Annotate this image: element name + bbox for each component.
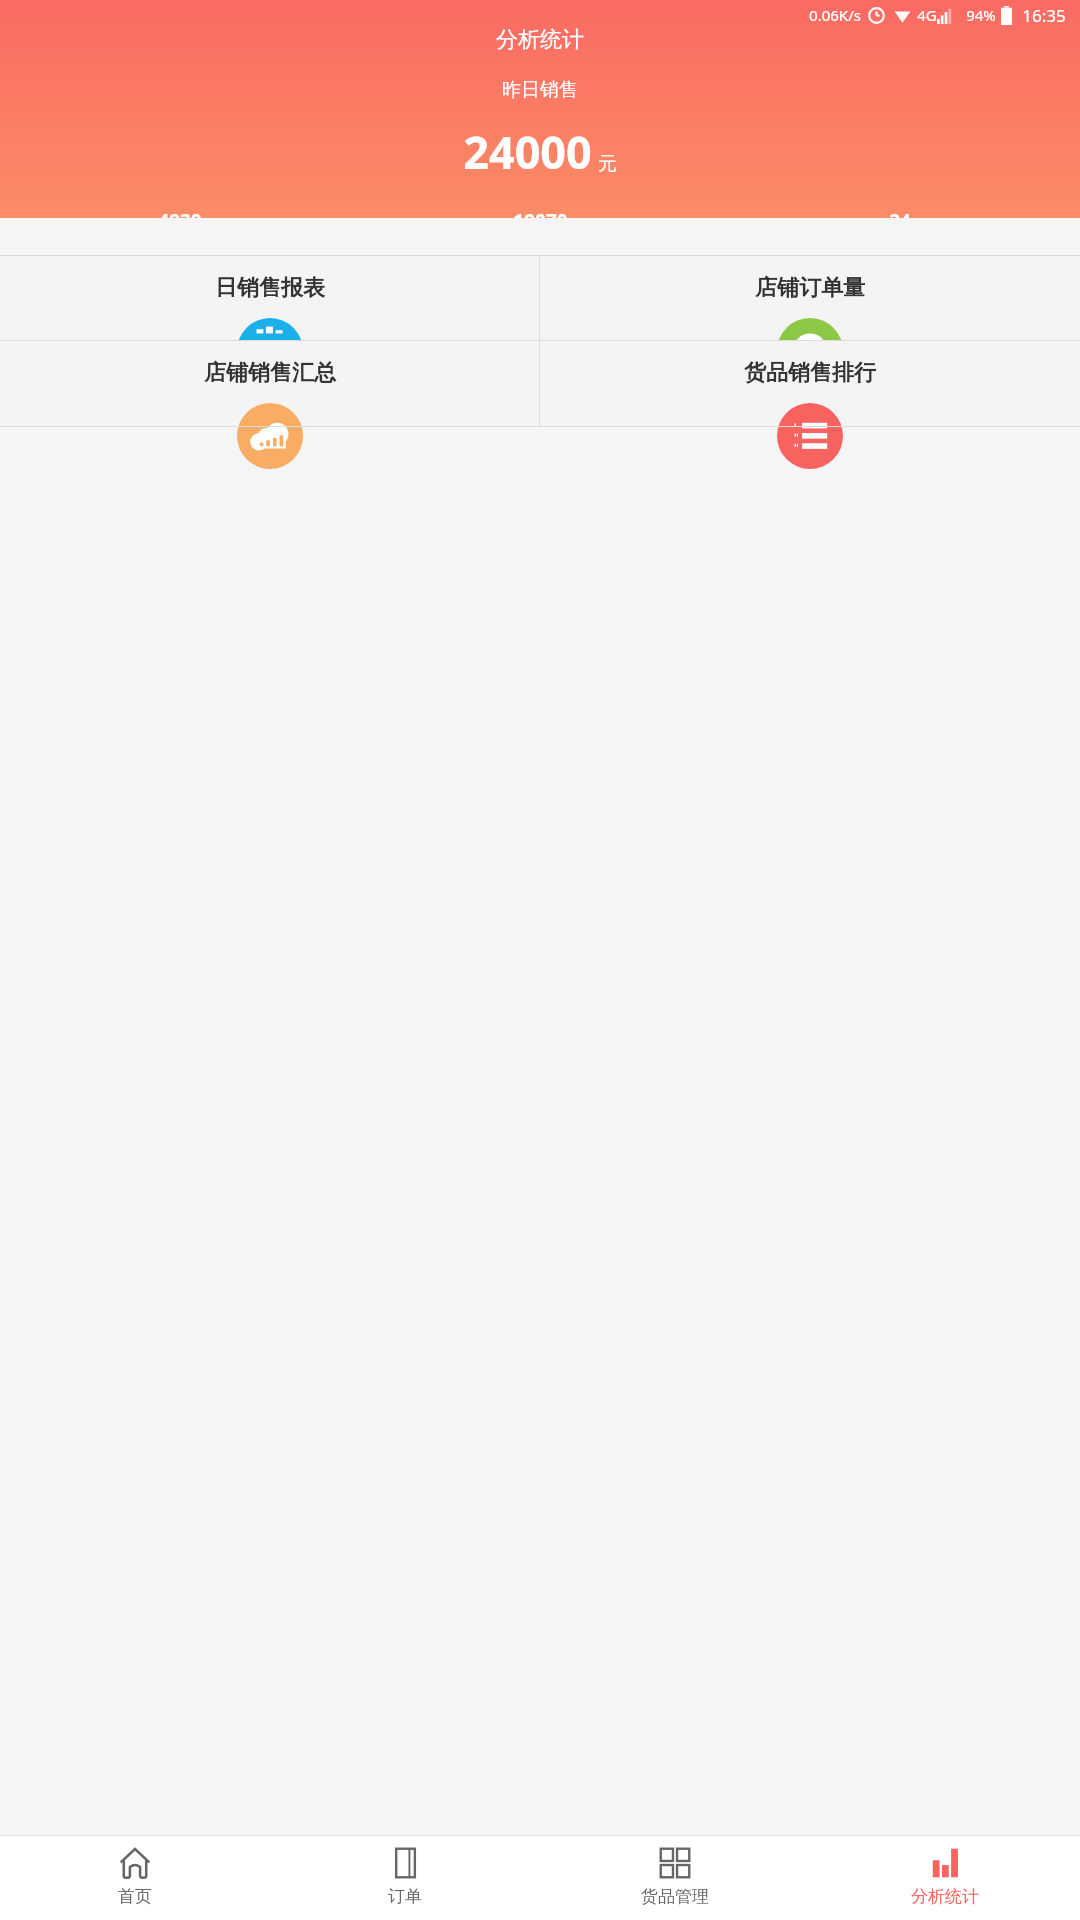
- other: Alarm: [868, 7, 885, 24]
- staticText: 货品销售排行: [744, 359, 876, 387]
- staticText: 订单: [388, 1886, 422, 1907]
- staticText: 首页: [118, 1886, 152, 1907]
- staticText: 店铺订单量: [755, 274, 865, 302]
- staticText: 24: [889, 208, 911, 218]
- button[interactable]: 分析统计: [810, 1836, 1080, 1920]
- other: Signal: [937, 7, 954, 24]
- other: Battery: [1001, 6, 1012, 25]
- staticText: 94%: [966, 5, 996, 25]
- staticText: 日销售报表: [215, 274, 325, 302]
- staticText: 16:35: [1022, 4, 1066, 27]
- staticText: 24000: [463, 121, 592, 182]
- button[interactable]: 店铺销售汇总: [0, 341, 539, 426]
- staticText: 货品管理: [641, 1886, 709, 1907]
- staticText: 4930: [158, 208, 202, 218]
- button[interactable]: 货品销售排行: [540, 341, 1080, 426]
- staticText: 4G: [917, 5, 937, 25]
- staticText: 19070: [513, 208, 568, 218]
- button[interactable]: 日销售报表: [0, 256, 539, 340]
- other: Wifi: [894, 7, 911, 24]
- button[interactable]: 货品管理: [540, 1836, 810, 1920]
- staticText: 0.06K/s: [809, 5, 861, 25]
- staticText: 店铺销售汇总: [204, 359, 336, 387]
- button[interactable]: 订单: [270, 1836, 540, 1920]
- button[interactable]: 店铺订单量: [540, 256, 1080, 340]
- staticText: 分析统计: [911, 1886, 979, 1907]
- button[interactable]: 首页: [0, 1836, 270, 1920]
- staticText: 元: [598, 152, 617, 176]
- staticText: 分析统计: [496, 26, 584, 54]
- staticText: 昨日销售: [502, 78, 578, 102]
